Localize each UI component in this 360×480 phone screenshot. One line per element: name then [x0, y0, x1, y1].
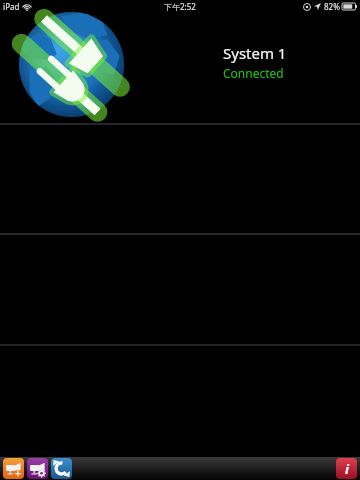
staticText: i — [345, 460, 349, 478]
staticText: 下午2:52 — [164, 1, 196, 12]
staticText: iPad — [3, 1, 20, 12]
button[interactable]: Add camera — [3, 458, 24, 479]
button[interactable]: Info — [336, 458, 357, 479]
other: System logo — [19, 12, 124, 117]
staticText: 82% — [324, 1, 340, 12]
button[interactable] — [0, 344, 360, 456]
button[interactable] — [0, 124, 360, 234]
button[interactable] — [0, 234, 360, 344]
button[interactable]: Camera settings — [27, 458, 48, 479]
button[interactable]: Refresh — [51, 458, 72, 479]
staticText: Connected — [223, 65, 284, 81]
staticText: System 1 — [223, 43, 287, 63]
